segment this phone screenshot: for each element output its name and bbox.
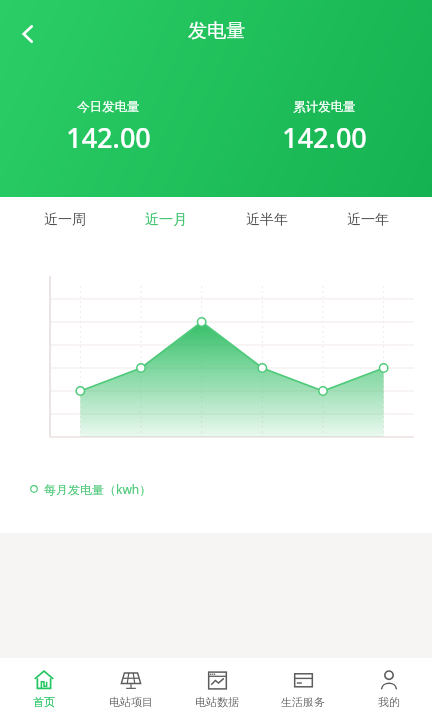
button[interactable]: 电站项目	[87, 658, 174, 720]
staticText: 今日发电量	[77, 99, 140, 115]
staticText: 近一周	[44, 211, 86, 229]
button[interactable]: 近一月	[115, 197, 216, 243]
button[interactable]: 近半年	[216, 197, 317, 243]
button[interactable]: 生活服务	[260, 658, 346, 720]
staticText: 电站数据	[195, 695, 239, 709]
staticText: 电站项目	[109, 695, 153, 709]
button[interactable]: 我的	[346, 658, 432, 720]
staticText: 142.00	[282, 119, 367, 156]
staticText: 发电量	[188, 19, 245, 43]
staticText: 累计发电量	[293, 99, 356, 115]
staticText: 每月发电量（kwh）	[44, 481, 152, 497]
staticText: 首页	[33, 695, 55, 709]
staticText: 我的	[378, 695, 400, 709]
button[interactable]: Back	[6, 12, 50, 56]
button[interactable]: 首页	[0, 658, 87, 720]
button[interactable]: 近一周	[14, 197, 115, 243]
staticText: 近一年	[347, 211, 389, 229]
staticText: 142.00	[66, 119, 151, 156]
staticText: 近半年	[246, 211, 288, 229]
staticText: 近一月	[145, 211, 187, 229]
staticText: 生活服务	[281, 695, 325, 709]
button[interactable]: 近一年	[317, 197, 418, 243]
button[interactable]: 电站数据	[174, 658, 260, 720]
